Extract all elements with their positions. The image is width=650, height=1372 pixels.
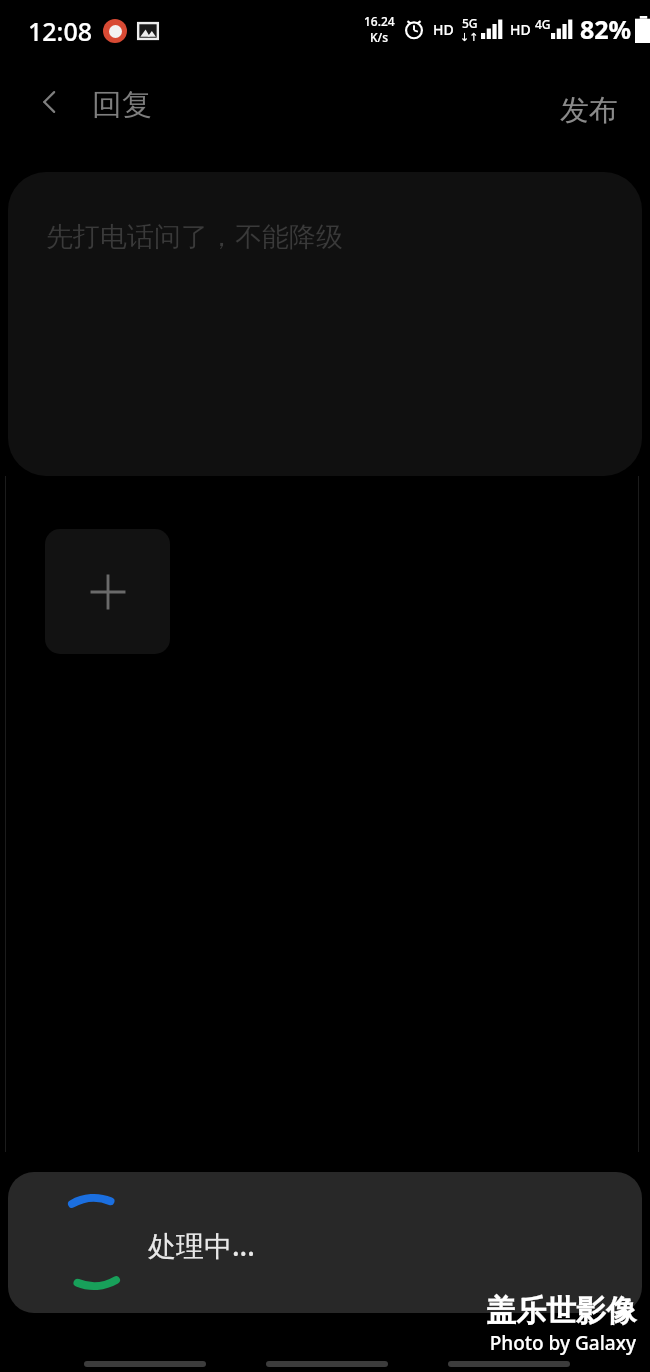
staticText: 先打电话问了，不能降级 <box>46 220 343 254</box>
button[interactable]: Home <box>266 1361 388 1367</box>
staticText: 5G <box>462 15 478 31</box>
staticText: 12:08 <box>28 14 93 48</box>
staticText: 回复 <box>92 86 152 124</box>
staticText: 盖乐世影像 <box>486 1292 636 1330</box>
staticText: HD <box>510 20 531 39</box>
staticText: HD <box>433 20 454 39</box>
button[interactable]: Back <box>448 1361 570 1367</box>
button[interactable]: 发布 <box>550 84 628 137</box>
button[interactable]: 处理中... <box>8 1172 642 1313</box>
button[interactable]: Recents <box>84 1361 206 1367</box>
staticText: 处理中... <box>148 1226 255 1264</box>
button[interactable]: Add image <box>45 529 170 654</box>
staticText: ↓↑ <box>460 31 479 44</box>
staticText: K/s <box>370 29 389 45</box>
button[interactable]: 先打电话问了，不能降级 <box>8 172 642 476</box>
staticText: 4G <box>535 16 551 32</box>
staticText: 发布 <box>560 92 618 129</box>
staticText: Photo by Galaxy <box>489 1330 636 1356</box>
staticText: 82% <box>580 12 632 46</box>
button[interactable]: Back <box>20 72 80 132</box>
button[interactable]: 回复 <box>88 80 156 130</box>
staticText: 16.24 <box>364 13 395 29</box>
